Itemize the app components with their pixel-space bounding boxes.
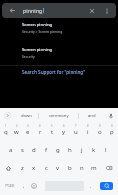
staticText: y [62,128,66,136]
staticText: , [23,183,25,190]
button[interactable]: w [12,124,21,140]
staticText: l [105,146,107,154]
button[interactable]: a [6,142,15,158]
staticText: o [98,128,102,136]
button[interactable]: Voice input [104,108,118,123]
button[interactable]: i [83,124,93,140]
button[interactable]: n [77,160,87,176]
staticText: and [88,113,96,119]
staticText: m [91,164,97,172]
button[interactable]: Expand suggestions [0,108,15,123]
staticText: Screen pinning [22,21,53,27]
staticText: v [56,164,60,172]
button[interactable]: r [35,124,45,140]
staticText: r [39,128,42,136]
button[interactable]: Search Support for "pinning" [0,66,118,78]
staticText: s [21,146,24,154]
button[interactable]: q [1,124,10,140]
button[interactable]: t [47,124,57,140]
button[interactable]: Back [2,3,23,18]
staticText: . [90,183,92,190]
staticText: p [110,128,114,136]
button[interactable]: m [89,160,99,176]
button[interactable]: y [59,124,69,140]
button[interactable]: j [77,142,87,158]
button[interactable]: Shift [0,159,17,177]
button[interactable]: z [18,160,27,176]
staticText: 7 [75,124,77,128]
button[interactable]: Search [100,182,113,190]
button[interactable]: Screen pinning [0,21,118,34]
button[interactable]: f [41,142,51,158]
button[interactable]: More options [98,3,116,18]
button[interactable]: ?123 [0,177,19,195]
button[interactable]: u [71,124,81,140]
staticText: 8 [87,124,89,128]
staticText: e [26,128,30,136]
staticText: d [32,146,36,154]
staticText: Security > Screen pinning [22,29,63,34]
staticText: 0 [111,124,113,128]
button[interactable]: and [79,108,104,123]
staticText: 1 [5,124,7,128]
button[interactable]: s [17,142,27,158]
staticText: k [92,146,96,154]
staticText: h [68,146,72,154]
staticText: Screen pinning [22,46,53,52]
button[interactable]: g [53,142,63,158]
button[interactable]: d [29,142,39,158]
button[interactable]: c [41,160,51,176]
staticText: x [32,164,36,172]
staticText: w [14,128,19,136]
staticText: n [80,164,84,172]
staticText: pinning [23,7,43,14]
button[interactable]: o [95,124,105,140]
staticText: ?123 [5,183,15,189]
button[interactable]: ceremony [39,108,78,123]
staticText: f [45,146,48,154]
button[interactable]: Screen pinning [0,46,118,59]
staticText: c [45,164,48,172]
staticText: down [21,113,32,119]
button[interactable]: Clear [86,3,98,18]
staticText: 2 [16,124,18,128]
button[interactable]: v [53,160,63,176]
button[interactable]: l [101,142,111,158]
staticText: a [9,146,13,154]
staticText: 6 [63,124,65,128]
button[interactable]: Backspace [100,159,118,177]
staticText: g [56,146,60,154]
staticText: ceremony [49,113,69,119]
button[interactable]: , [19,177,28,195]
button[interactable]: h [65,142,75,158]
button[interactable]: Emoji [28,177,40,195]
button[interactable]: p [107,124,117,140]
staticText: q [4,128,8,136]
staticText: t [51,128,54,136]
button[interactable]: down [15,108,38,123]
staticText: Security [22,54,35,59]
button[interactable]: x [29,160,39,176]
button[interactable]: . [84,177,97,195]
staticText: i [87,128,89,136]
staticText: z [21,164,24,172]
staticText: 3 [27,124,29,128]
button[interactable]: e [23,124,33,140]
staticText: u [74,128,78,136]
staticText: b [68,164,72,172]
staticText: Search Support for "pinning" [22,69,86,75]
staticText: j [81,146,83,154]
staticText: 4 [39,124,41,128]
staticText: 5 [51,124,53,128]
button[interactable]: k [89,142,99,158]
button[interactable]: b [65,160,75,176]
staticText: 9 [99,124,101,128]
